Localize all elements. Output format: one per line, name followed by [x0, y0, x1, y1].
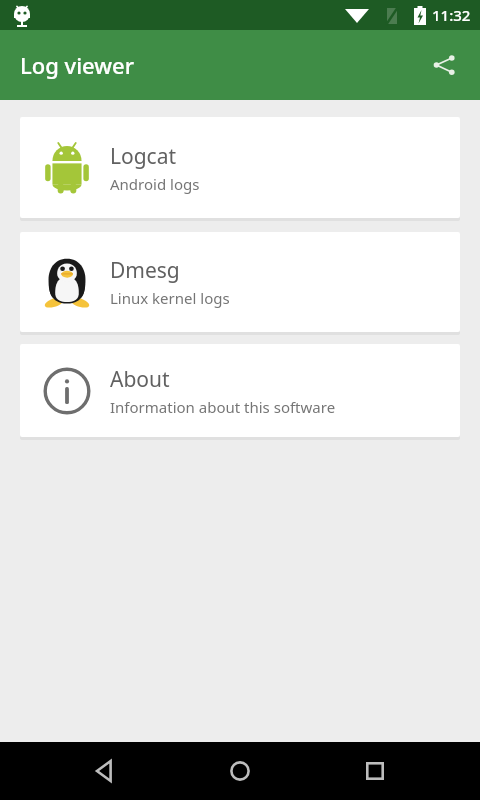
button[interactable]: Share [420, 41, 468, 89]
staticText: Dmesg [110, 256, 180, 285]
staticText: About [110, 365, 170, 394]
button[interactable]: Back [75, 742, 135, 800]
staticText: Linux kernel logs [110, 288, 230, 308]
button[interactable]: Home [210, 742, 270, 800]
button[interactable]: Recent apps [345, 742, 405, 800]
button[interactable]: About [20, 344, 460, 437]
button[interactable]: Logcat [20, 117, 460, 218]
staticText: Logcat [110, 142, 177, 171]
staticText: Information about this software [110, 397, 336, 417]
staticText: Android logs [110, 174, 200, 194]
button[interactable]: Dmesg [20, 232, 460, 332]
staticText: 11:32 [432, 5, 471, 25]
staticText: Log viewer [20, 50, 134, 80]
